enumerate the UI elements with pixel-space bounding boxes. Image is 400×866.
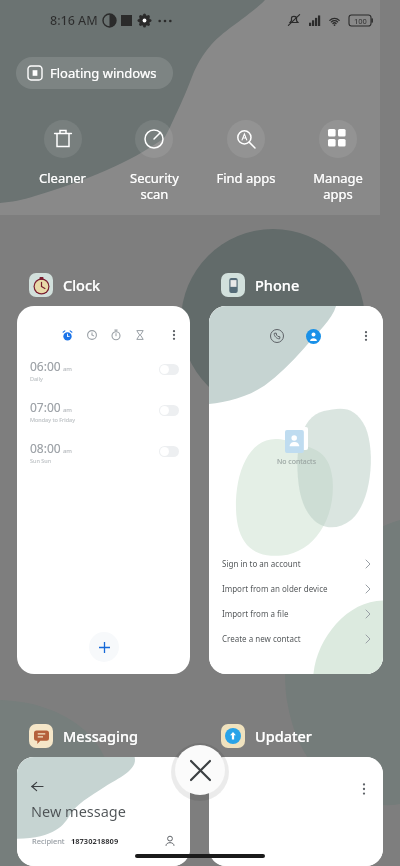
button[interactable]: Close all xyxy=(175,745,225,795)
staticText: Manage apps xyxy=(313,169,363,202)
staticText: Cleaner xyxy=(39,169,86,187)
button[interactable]: Manage apps xyxy=(292,120,384,202)
button[interactable]: Toggle alarm xyxy=(159,446,179,457)
button[interactable]: Updater xyxy=(221,724,312,748)
button[interactable]: Security scan xyxy=(108,120,200,202)
button[interactable]: Import from an older device xyxy=(222,576,372,601)
button[interactable]: 06:00 xyxy=(30,349,179,390)
button[interactable]: Create a new contact xyxy=(222,626,372,651)
staticText: Recipient xyxy=(32,836,65,846)
button[interactable]: World clock xyxy=(83,326,101,344)
staticText: 8:16 AM xyxy=(50,12,98,29)
staticText: Floating windows xyxy=(50,64,157,82)
button[interactable]: More options xyxy=(165,326,183,344)
button[interactable]: Find apps xyxy=(200,120,292,187)
staticText: Import from a file xyxy=(222,608,289,619)
button[interactable]: Alarm xyxy=(17,306,190,674)
button[interactable]: Add alarm xyxy=(89,632,119,662)
button[interactable]: Sign in to an account xyxy=(222,551,372,576)
button[interactable]: Timer xyxy=(131,326,149,344)
button[interactable]: Dialer xyxy=(268,327,286,345)
button[interactable]: 08:00 xyxy=(30,431,179,472)
staticText: am xyxy=(63,365,72,373)
button[interactable]: Contacts xyxy=(306,329,321,344)
staticText: 08:00 xyxy=(30,440,61,456)
staticText: Updater xyxy=(255,726,312,746)
staticText: 06:00 xyxy=(30,358,61,374)
staticText: Phone xyxy=(255,275,300,295)
button[interactable]: Back xyxy=(28,777,46,795)
button[interactable]: Cleaner xyxy=(17,120,108,187)
staticText: Security scan xyxy=(130,169,179,202)
button[interactable]: Toggle alarm xyxy=(159,364,179,375)
staticText: 07:00 xyxy=(30,399,61,415)
button[interactable]: Import from a file xyxy=(222,601,372,626)
button[interactable]: Alarm xyxy=(58,326,76,344)
button[interactable]: Toggle alarm xyxy=(159,405,179,416)
button[interactable]: Stopwatch xyxy=(107,326,125,344)
button[interactable] xyxy=(209,757,383,866)
staticText: 100 xyxy=(354,16,367,26)
button[interactable]: Floating windows xyxy=(16,57,173,89)
staticText: Clock xyxy=(63,275,101,295)
button[interactable]: Phone xyxy=(221,273,300,297)
staticText: am xyxy=(63,406,72,414)
staticText: Daily xyxy=(30,375,43,382)
button[interactable]: More options xyxy=(357,327,375,345)
staticText: Sign in to an account xyxy=(222,558,301,569)
button[interactable]: Back xyxy=(17,757,190,866)
staticText: Find apps xyxy=(216,169,276,187)
staticText: Messaging xyxy=(63,726,139,746)
staticText: New message xyxy=(31,801,126,821)
button[interactable]: Messaging xyxy=(29,724,139,748)
staticText: No contacts xyxy=(277,457,316,467)
staticText: Sun Sun xyxy=(30,457,52,464)
button[interactable]: Clock xyxy=(29,273,101,297)
staticText: Create a new contact xyxy=(222,633,301,644)
staticText: am xyxy=(63,447,72,455)
staticText: 18730218809 xyxy=(71,836,119,846)
staticText: Monday to Friday xyxy=(30,416,75,423)
button[interactable]: Dialer xyxy=(209,306,383,674)
button[interactable]: 07:00 xyxy=(30,390,179,431)
staticText: Import from an older device xyxy=(222,583,328,594)
